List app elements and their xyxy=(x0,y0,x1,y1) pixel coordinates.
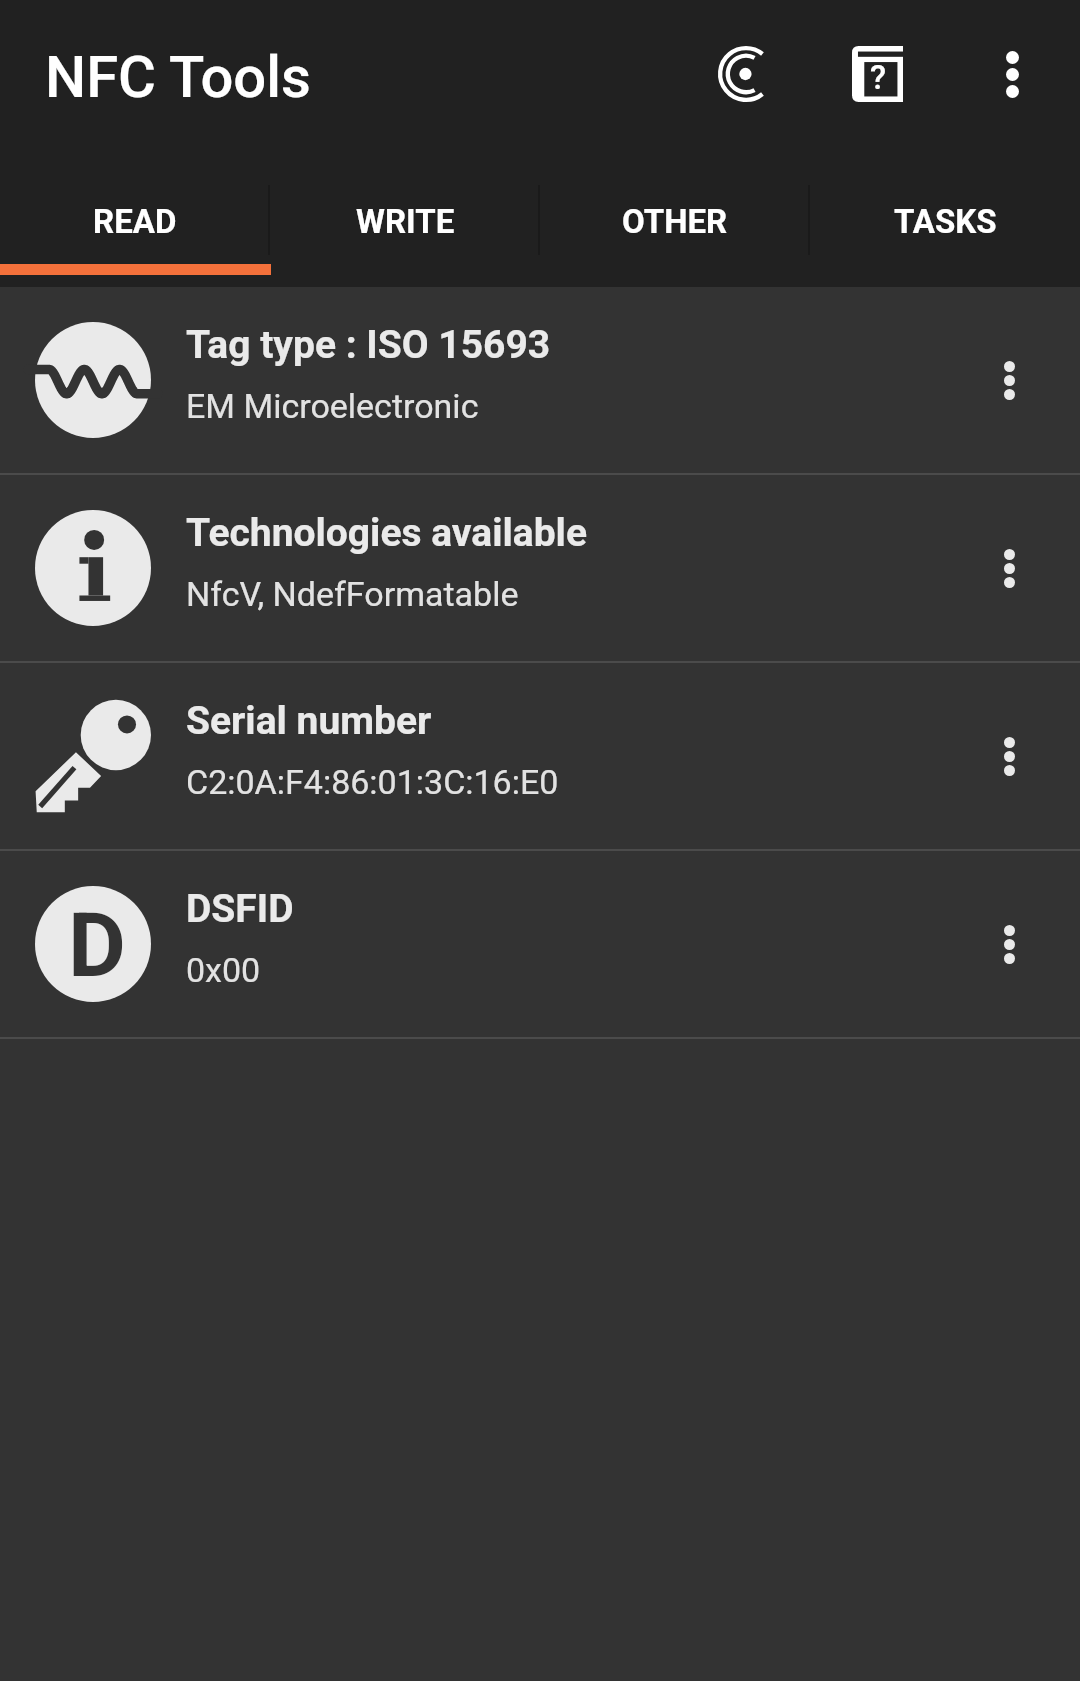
staticText: C2:0A:F4:86:01:3C:16:E0 xyxy=(186,762,559,802)
button[interactable]: More options xyxy=(938,663,1080,849)
staticText: READ xyxy=(93,202,177,241)
button[interactable]: WRITE xyxy=(270,148,540,287)
staticText: Serial number xyxy=(186,698,432,744)
staticText: 0x00 xyxy=(186,950,261,990)
button[interactable]: Serial number xyxy=(0,663,1080,849)
staticText: DSFID xyxy=(186,886,294,932)
button[interactable]: Help xyxy=(811,11,944,137)
staticText: WRITE xyxy=(356,202,455,241)
staticText: OTHER xyxy=(622,202,728,241)
staticText: EM Microelectronic xyxy=(186,386,479,426)
button[interactable]: NFC xyxy=(680,11,811,137)
staticText: ? xyxy=(870,58,887,97)
button[interactable]: READ xyxy=(0,148,270,287)
staticText: D xyxy=(68,893,126,997)
button[interactable]: D xyxy=(0,851,1080,1037)
button[interactable]: More options xyxy=(944,11,1080,137)
button[interactable]: OTHER xyxy=(540,148,810,287)
button[interactable]: Technologies available xyxy=(0,475,1080,661)
button[interactable]: More options xyxy=(938,287,1080,473)
staticText: NfcV, NdefFormatable xyxy=(186,574,519,614)
staticText: TASKS xyxy=(894,202,997,241)
button[interactable]: Tag type : ISO 15693 xyxy=(0,287,1080,473)
staticText: Tag type : ISO 15693 xyxy=(186,322,551,368)
button[interactable]: More options xyxy=(938,851,1080,1037)
staticText: NFC Tools xyxy=(45,43,311,111)
button[interactable]: More options xyxy=(938,475,1080,661)
staticText: Technologies available xyxy=(186,510,587,556)
button[interactable]: TASKS xyxy=(810,148,1080,287)
